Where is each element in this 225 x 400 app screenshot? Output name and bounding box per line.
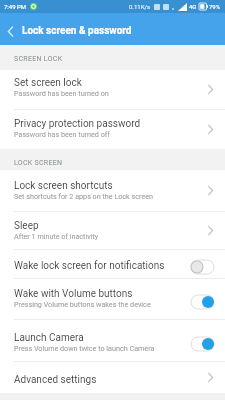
button[interactable]: Wake with Volume buttons <box>0 279 225 319</box>
staticText: Wake with Volume buttons <box>14 288 133 300</box>
staticText: Password has been turned on <box>14 89 109 97</box>
staticText: 0.11K/s <box>129 3 151 10</box>
staticText: Advanced settings <box>14 374 97 386</box>
staticText: SCREEN LOCK <box>14 55 63 63</box>
staticText: After 1 minute of inactivity <box>14 232 99 240</box>
staticText: 79% <box>209 3 221 10</box>
staticText: Sleep <box>14 220 39 232</box>
button[interactable]: Lock screen shortcuts <box>0 170 225 211</box>
staticText: Lock screen & password <box>22 25 132 37</box>
staticText: LOCK SCREEN <box>14 159 63 167</box>
staticText: Lock screen shortcuts <box>14 180 113 192</box>
button[interactable]: Advanced settings <box>0 362 225 393</box>
staticText: Set screen lock <box>14 77 82 89</box>
button[interactable] <box>4 25 16 37</box>
staticText: Launch Camera <box>14 332 84 344</box>
staticText: 4G <box>189 3 197 10</box>
staticText: Password has been turned off <box>14 130 110 138</box>
staticText: Pressing Volume buttons wakes the device <box>14 300 151 308</box>
button[interactable]: Set screen lock <box>0 70 225 109</box>
button[interactable]: Wake lock screen for notifications <box>0 250 225 278</box>
staticText: Privacy protection password <box>14 118 141 130</box>
staticText: Press Volume down twice to launch Camera <box>14 344 155 352</box>
staticText: 7:49 PM <box>4 3 27 10</box>
staticText: Wake lock screen for notifications <box>14 260 165 272</box>
button[interactable]: Privacy protection password <box>0 110 225 149</box>
button[interactable]: Launch Camera <box>0 320 225 361</box>
staticText: Set shortcuts for 2 apps on the Lock scr… <box>14 192 153 200</box>
button[interactable]: Sleep <box>0 212 225 249</box>
